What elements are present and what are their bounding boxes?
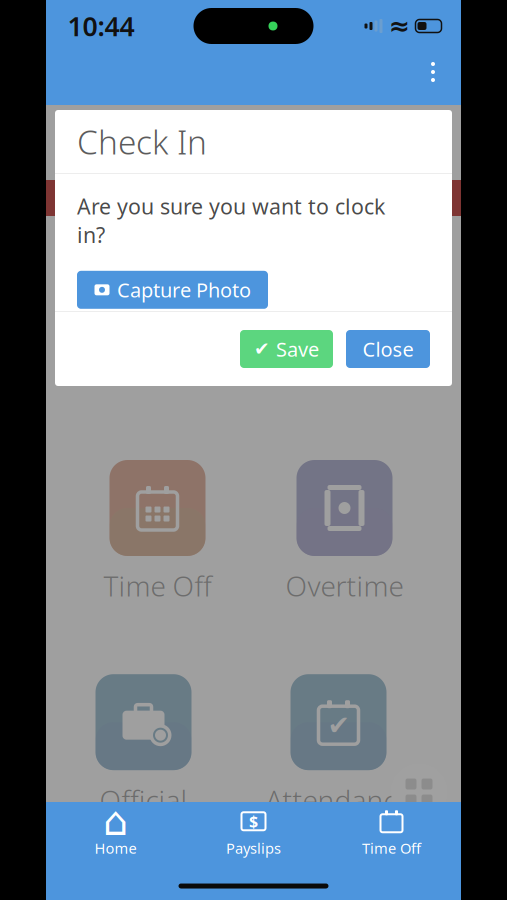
button[interactable]: Overtime (285, 460, 403, 604)
staticText: Check In (77, 119, 207, 164)
button[interactable]: Capture Photo (77, 271, 268, 309)
staticText: ✔ (254, 338, 270, 360)
button[interactable]: ✔ (240, 330, 333, 368)
staticText: Time Off (362, 838, 421, 858)
staticText: $ (249, 811, 258, 832)
staticText: Home (94, 838, 136, 858)
staticText: Are you sure you want to clock in? (77, 192, 385, 249)
button[interactable]: App grid (391, 764, 447, 820)
staticText: 10:44 (67, 8, 134, 44)
button[interactable]: Close (346, 330, 430, 368)
button[interactable]: Official (95, 674, 191, 818)
staticText: Save (276, 336, 319, 362)
staticText: Attendance (265, 781, 411, 818)
staticText: Time Off (103, 567, 211, 604)
staticText: ✔ (327, 710, 349, 740)
button[interactable]: More options (415, 52, 451, 92)
staticText: Official (99, 781, 187, 818)
staticText: Close (362, 336, 413, 362)
staticText: ⌂ (103, 799, 128, 844)
button[interactable]: ⌂ (46, 805, 184, 861)
button[interactable]: Time Off (103, 460, 211, 604)
button[interactable]: $ (184, 805, 322, 861)
staticText: Capture Photo (117, 277, 251, 303)
staticText: Payslips (226, 838, 281, 858)
staticText: ≈ (388, 12, 409, 40)
button[interactable]: Time Off (322, 805, 460, 861)
staticText: Overtime (285, 567, 403, 604)
button[interactable]: ✔ (265, 674, 411, 818)
